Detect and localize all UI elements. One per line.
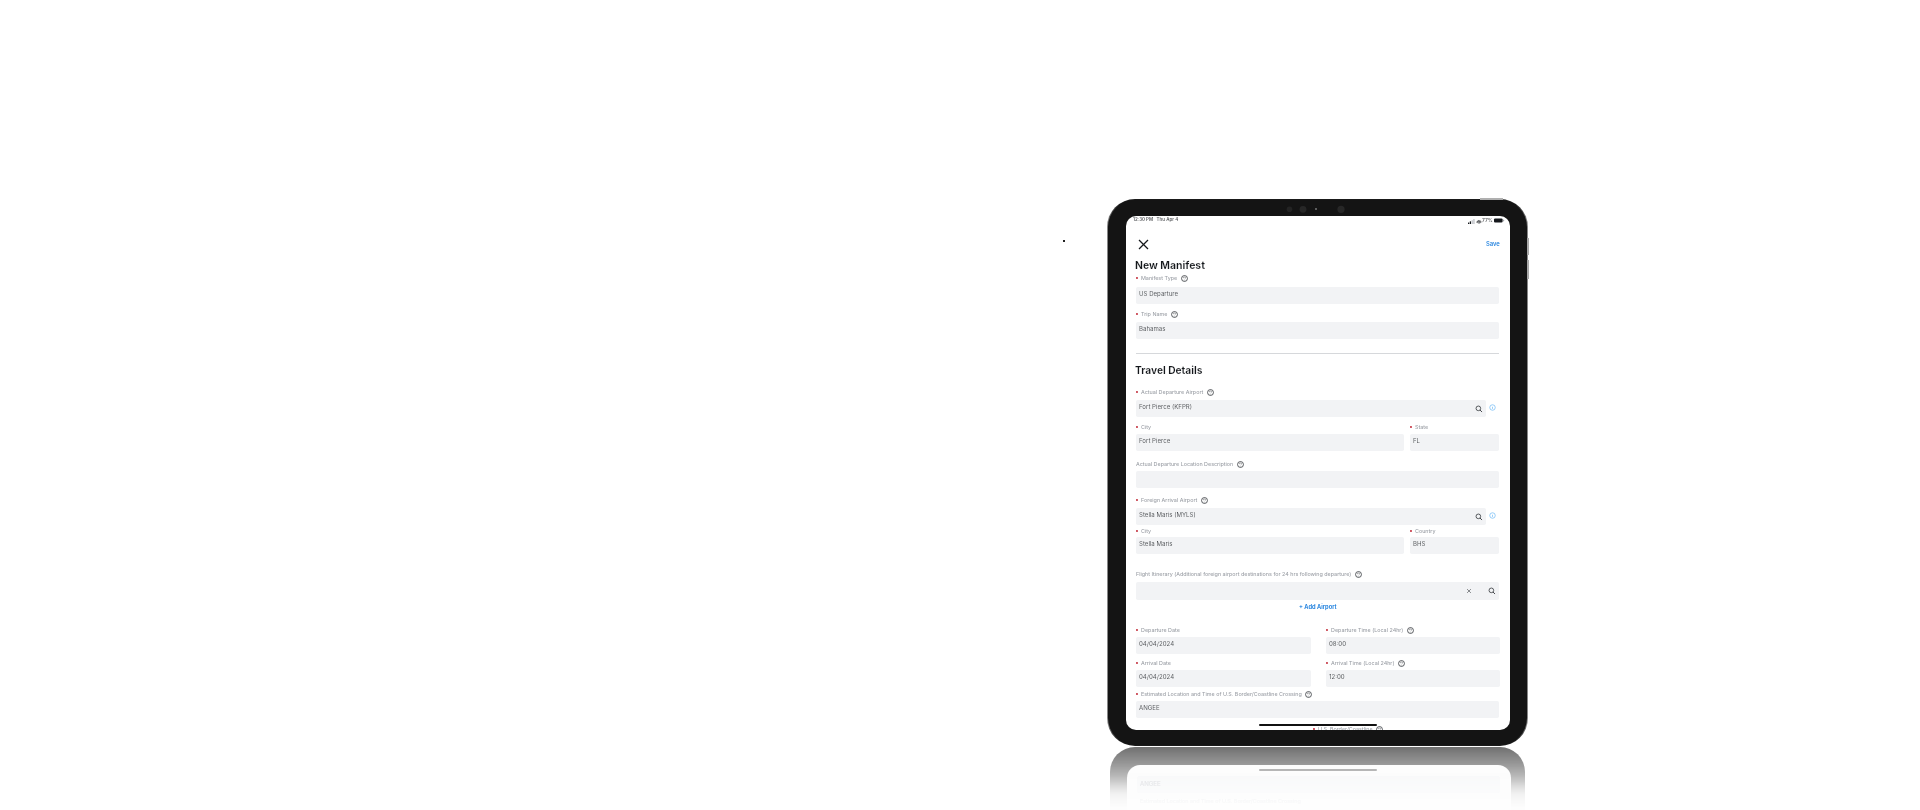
staticText: Flight Itinerary (Additional foreign air…: [1136, 571, 1352, 578]
staticText: 04/04/2024: [1139, 640, 1175, 647]
button[interactable]: Save: [1484, 238, 1502, 249]
staticText: Arrival Date: [1141, 660, 1171, 667]
button[interactable]: BHS: [1410, 537, 1499, 554]
staticText: Fort Pierce (KFPR): [1139, 403, 1192, 410]
staticText: Departure Date: [1141, 627, 1180, 634]
staticText: US Departure: [1139, 290, 1179, 297]
button[interactable]: Search airport: [1488, 587, 1496, 595]
button[interactable]: Fort Pierce: [1136, 434, 1404, 451]
staticText: 12:00: [1329, 673, 1345, 680]
staticText: Travel Details: [1135, 364, 1203, 376]
button[interactable]: Stella Maris (MYLS): [1136, 508, 1486, 525]
staticText: ANGEE: [1140, 780, 1161, 787]
button[interactable]: Stella Maris: [1136, 537, 1404, 554]
staticText: State: [1415, 424, 1429, 431]
staticText: U.S. Border/Coastline: [1318, 726, 1373, 730]
button[interactable]: 12:00: [1326, 670, 1500, 687]
button[interactable]: Close: [1135, 236, 1151, 252]
button[interactable]: 04/04/2024: [1136, 637, 1311, 654]
button[interactable]: Search airport: [1475, 513, 1483, 521]
staticText: BHS: [1413, 540, 1426, 547]
button[interactable]: Info: [1489, 512, 1496, 519]
staticText: Trip Name: [1141, 311, 1168, 318]
staticText: Departure Time (Local 24hr): [1331, 627, 1404, 634]
staticText: Foreign Arrival Airport: [1141, 497, 1198, 504]
staticText: ANGEE: [1139, 704, 1160, 711]
button[interactable]: Clear: [1136, 582, 1499, 600]
staticText: 08:00: [1329, 640, 1347, 647]
staticText: 04/04/2024: [1139, 673, 1175, 680]
button[interactable]: Info: [1489, 404, 1496, 411]
staticText: Actual Departure Location Description: [1136, 461, 1234, 468]
staticText: FL: [1413, 437, 1421, 444]
staticText: City: [1141, 424, 1152, 431]
staticText: Save: [1486, 240, 1500, 247]
staticText: 12:30 PM Thu Apr 4: [1133, 217, 1179, 222]
staticText: Manifest Type: [1141, 275, 1178, 282]
staticText: Arrival Time (Local 24hr): [1331, 660, 1395, 667]
button[interactable]: Fort Pierce (KFPR): [1136, 400, 1486, 417]
button[interactable]: 08:00: [1326, 637, 1500, 654]
staticText: Bahamas: [1139, 325, 1166, 332]
button[interactable]: Bahamas: [1136, 322, 1499, 339]
staticText: Stella Maris: [1139, 540, 1173, 547]
staticText: Stella Maris (MYLS): [1139, 511, 1196, 518]
button[interactable]: ANGEE: [1136, 701, 1499, 718]
staticText: Fort Pierce: [1139, 437, 1171, 444]
button[interactable]: 04/04/2024: [1136, 670, 1311, 687]
button[interactable]: Clear: [1466, 588, 1472, 594]
button[interactable]: + Add Airport: [1297, 601, 1339, 612]
staticText: New Manifest: [1135, 259, 1205, 272]
button[interactable]: US Departure: [1136, 287, 1499, 304]
staticText: Country: [1415, 528, 1436, 535]
staticText: 77%: [1482, 217, 1493, 223]
staticText: Estimated Location and Time of U.S. Bord…: [1141, 691, 1302, 698]
staticText: + Add Airport: [1299, 603, 1337, 610]
button[interactable]: Search airport: [1475, 405, 1483, 413]
button[interactable]: FL: [1410, 434, 1499, 451]
staticText: City: [1141, 528, 1152, 535]
staticText: Actual Departure Airport: [1141, 389, 1204, 396]
